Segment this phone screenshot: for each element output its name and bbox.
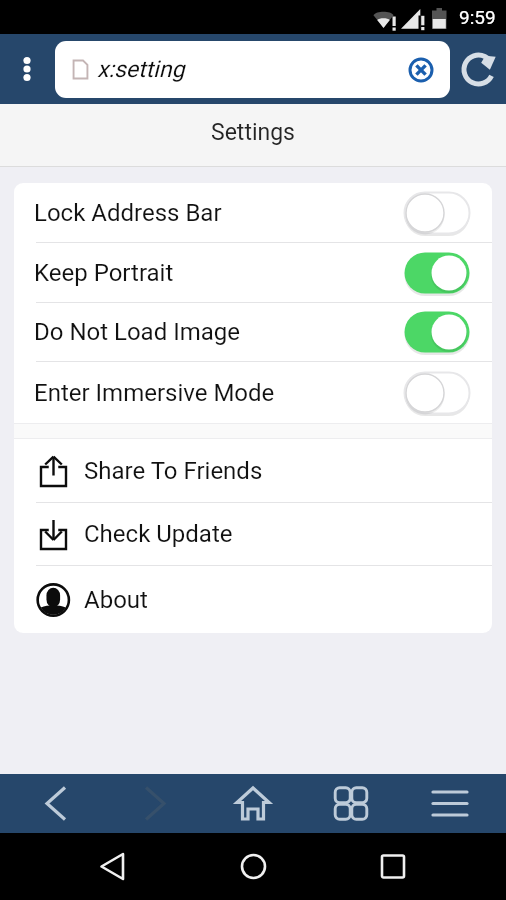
- button[interactable]: Recents: [323, 833, 506, 900]
- staticText: Share To Friends: [84, 457, 263, 485]
- button[interactable]: Check Update: [14, 503, 492, 565]
- staticText: Do Not Load Image: [34, 318, 240, 346]
- staticText: Settings: [211, 119, 295, 146]
- button[interactable]: Back: [0, 774, 105, 833]
- button[interactable]: Do Not Load Image: [14, 303, 492, 361]
- button[interactable]: x:setting: [55, 41, 450, 98]
- button[interactable]: More options: [0, 34, 54, 104]
- button[interactable]: Lock Address Bar: [14, 183, 492, 242]
- button[interactable]: Home: [200, 774, 302, 833]
- staticText: Lock Address Bar: [34, 199, 222, 227]
- staticText: x:setting: [97, 56, 185, 83]
- button[interactable]: Home: [180, 833, 323, 900]
- button[interactable]: Reload: [450, 34, 506, 104]
- button[interactable]: About: [14, 566, 492, 633]
- button[interactable]: Tabs: [302, 774, 400, 833]
- button[interactable]: Keep Portrait: [14, 243, 492, 302]
- staticText: Keep Portrait: [34, 259, 174, 287]
- button[interactable]: Enter Immersive Mode: [14, 362, 492, 423]
- button[interactable]: Share To Friends: [14, 439, 492, 502]
- button[interactable]: Menu: [400, 774, 506, 833]
- staticText: 9:59: [459, 6, 496, 28]
- button[interactable]: Back: [0, 833, 180, 900]
- staticText: About: [84, 586, 148, 614]
- staticText: Enter Immersive Mode: [34, 379, 275, 407]
- button[interactable]: Clear: [399, 48, 443, 92]
- staticText: Check Update: [84, 520, 233, 548]
